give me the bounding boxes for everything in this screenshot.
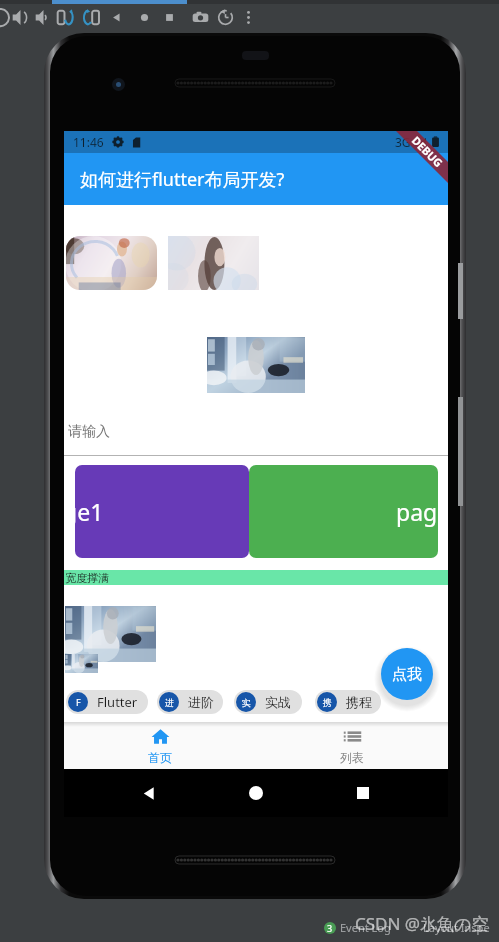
staticText: 3	[327, 922, 333, 934]
button[interactable]: 首页	[64, 722, 256, 769]
button[interactable]: 进	[157, 690, 223, 714]
button[interactable]: History	[214, 4, 236, 31]
button[interactable]: F	[66, 690, 148, 714]
button[interactable]: 点我	[381, 648, 433, 700]
staticText: 携	[323, 697, 332, 708]
button[interactable]: Rotate	[0, 4, 11, 31]
button[interactable]: Back	[127, 771, 171, 815]
button[interactable]: 列表	[256, 722, 448, 769]
staticText: 11:46	[73, 134, 104, 150]
staticText: 首页	[148, 750, 172, 765]
button[interactable]: Home	[234, 771, 278, 815]
staticText: 进阶	[188, 694, 214, 710]
button[interactable]: page1	[75, 465, 249, 558]
staticText: page1	[75, 496, 104, 527]
staticText: Flutter	[97, 693, 138, 711]
button[interactable]: Layout Inspe	[423, 920, 490, 935]
staticText: 请输入	[68, 423, 110, 441]
staticText: 如何进行flutter布局开发?	[80, 167, 285, 192]
button[interactable]: Event Log	[340, 920, 391, 935]
button[interactable]: Volume down	[32, 4, 54, 31]
staticText: 宽度撑满	[65, 571, 109, 585]
staticText: 实战	[265, 694, 291, 710]
button[interactable]: Screenshot	[189, 4, 211, 31]
button[interactable]: Recents	[341, 771, 385, 815]
staticText: 实	[242, 697, 251, 708]
button[interactable]: 携	[315, 690, 381, 714]
button[interactable]: page2	[249, 465, 438, 558]
staticText: F	[76, 696, 81, 708]
staticText: 列表	[340, 750, 364, 765]
button[interactable]: Home	[133, 4, 155, 31]
staticText: 进	[165, 697, 174, 708]
button[interactable]: Rotate left	[54, 4, 76, 31]
staticText: 点我	[392, 665, 422, 684]
button[interactable]: More	[237, 4, 259, 31]
button[interactable]: 实	[234, 690, 302, 714]
button[interactable]: Volume up	[9, 4, 31, 31]
staticText: page2	[396, 496, 438, 527]
staticText: 携程	[346, 694, 372, 710]
staticText: 3G	[395, 134, 411, 150]
button[interactable]: 3	[324, 922, 336, 934]
button[interactable]: Rotate right	[80, 4, 102, 31]
staticText: CSDN @氷魚の空	[355, 912, 489, 935]
button[interactable]: Back	[105, 4, 127, 31]
button[interactable]: Overview	[158, 4, 180, 31]
